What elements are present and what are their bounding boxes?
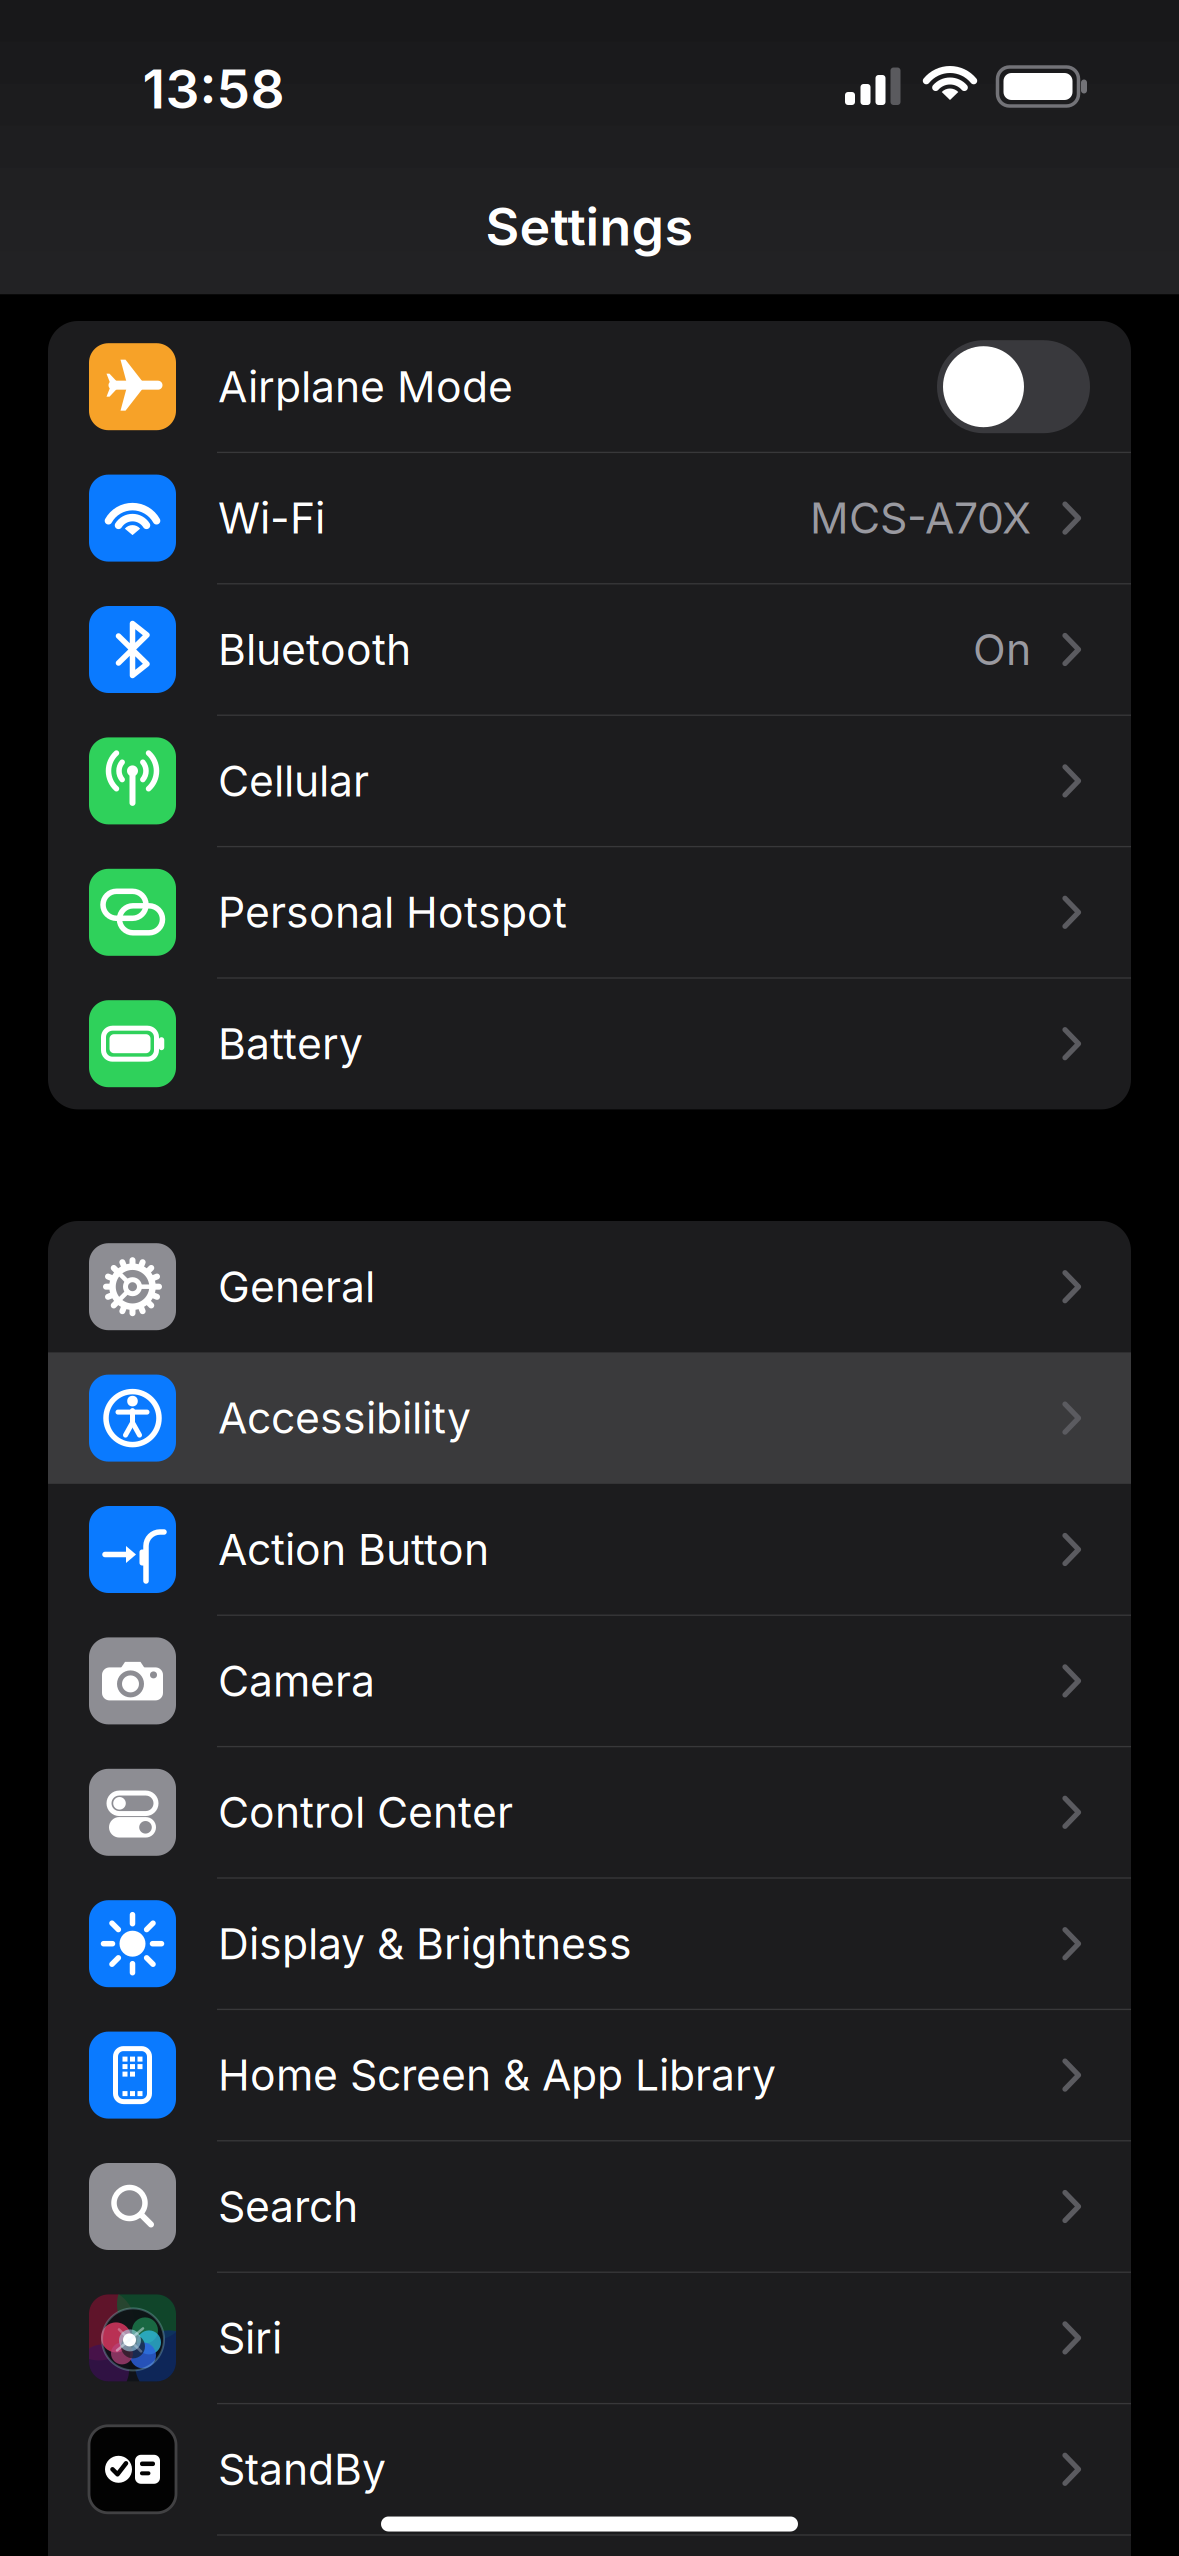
staticText: MCS-A70X xyxy=(810,493,1031,543)
staticText: General xyxy=(218,1261,375,1312)
staticText: 13:58 xyxy=(142,57,284,120)
staticText: Control Center xyxy=(218,1787,513,1837)
button[interactable]: Home Screen & App Library xyxy=(48,2009,1131,2141)
staticText: Action Button xyxy=(218,1524,489,1575)
button[interactable]: Display & Brightness xyxy=(48,1878,1131,2009)
button[interactable]: StandBy xyxy=(48,2404,1131,2535)
button[interactable]: General xyxy=(48,1221,1131,1352)
staticText: Battery xyxy=(218,1018,363,1069)
staticText: Wi-Fi xyxy=(218,493,325,543)
staticText: Cellular xyxy=(218,756,369,806)
staticText: StandBy xyxy=(218,2444,386,2494)
staticText: Personal Hotspot xyxy=(218,887,567,937)
staticText: Airplane Mode xyxy=(218,361,513,412)
button[interactable]: Siri xyxy=(48,2272,1131,2404)
button[interactable]: Accessibility xyxy=(48,1352,1131,1484)
staticText: On xyxy=(973,624,1031,675)
button[interactable]: Bluetooth xyxy=(48,584,1131,715)
staticText: Bluetooth xyxy=(218,624,411,675)
button[interactable]: Cellular xyxy=(48,715,1131,847)
button[interactable]: Search xyxy=(48,2141,1131,2272)
button[interactable]: Wi-Fi xyxy=(48,452,1131,584)
staticText: Settings xyxy=(485,196,693,257)
staticText: Camera xyxy=(218,1656,375,1706)
button[interactable]: Control Center xyxy=(48,1747,1131,1878)
button[interactable]: Camera xyxy=(48,1615,1131,1747)
staticText: Search xyxy=(218,2181,358,2232)
staticText: Accessibility xyxy=(218,1393,471,1443)
button[interactable]: Action Button xyxy=(48,1484,1131,1615)
button[interactable]: Battery xyxy=(48,978,1131,1109)
button[interactable]: Airplane Mode xyxy=(48,321,1131,452)
button[interactable]: Personal Hotspot xyxy=(48,847,1131,978)
staticText: Home Screen & App Library xyxy=(218,2050,776,2100)
staticText: Siri xyxy=(218,2313,282,2363)
staticText: Display & Brightness xyxy=(218,1918,632,1969)
